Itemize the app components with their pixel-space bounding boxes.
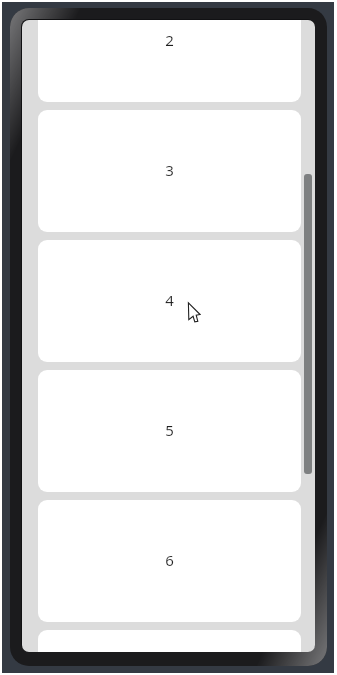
- button[interactable]: 5: [38, 370, 301, 492]
- button[interactable]: 4: [38, 240, 301, 362]
- button[interactable]: 6: [38, 500, 301, 622]
- staticText: 4: [165, 290, 174, 310]
- staticText: 3: [165, 160, 174, 180]
- staticText: 6: [165, 550, 174, 570]
- other: Scrollbar: [304, 174, 312, 474]
- button[interactable]: 2: [38, 20, 301, 102]
- button[interactable]: 3: [38, 110, 301, 232]
- staticText: 5: [165, 420, 174, 440]
- staticText: 2: [165, 30, 174, 50]
